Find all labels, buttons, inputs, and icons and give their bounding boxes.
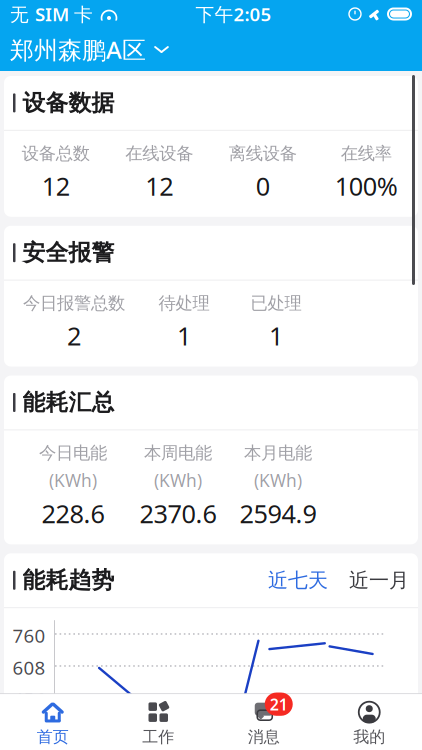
staticText: 本月电能 [244, 442, 312, 464]
staticText: 今日电能 [39, 442, 107, 464]
staticText: (KWh) [254, 469, 302, 492]
staticText: 608 [12, 655, 45, 680]
staticText: 1 [269, 319, 283, 352]
staticText: 本周电能 [144, 442, 212, 464]
staticText: 近一月 [349, 568, 409, 593]
button[interactable]: 近一月 [335, 568, 409, 593]
staticText: 能耗趋势 [22, 566, 114, 594]
staticText: 待处理 [158, 293, 209, 314]
staticText: 郑州森鹏A区 [10, 34, 146, 65]
staticText: 无 SIM 卡 [10, 2, 93, 26]
staticText: 12 [42, 169, 70, 203]
staticText: 2370.6 [139, 497, 216, 530]
staticText: 工作 [142, 727, 174, 747]
staticText: 100% [335, 169, 398, 203]
staticText: 首页 [37, 727, 69, 747]
staticText: 760 [12, 623, 45, 648]
button[interactable]: 近七天 [268, 568, 328, 593]
staticText: (KWh) [49, 469, 97, 492]
staticText: 能耗汇总 [22, 388, 114, 416]
staticText: 在线设备 [125, 143, 193, 164]
staticText: 228.6 [41, 497, 104, 530]
button[interactable]: 我的 [316, 694, 422, 750]
staticText: 21 [270, 693, 288, 715]
staticText: 456 [12, 687, 45, 712]
staticText: 12 [145, 169, 173, 203]
staticText: 0 [256, 169, 270, 203]
button[interactable]: 首页 [0, 694, 105, 750]
staticText: 设备总数 [22, 143, 90, 164]
staticText: 1 [177, 319, 191, 352]
button[interactable]: 工作 [105, 694, 211, 750]
staticText: 在线率 [341, 143, 392, 164]
staticText: 近七天 [268, 568, 328, 593]
staticText: 2594.9 [239, 497, 316, 530]
button[interactable]: 21 [211, 694, 316, 750]
staticText: 消息 [248, 727, 280, 747]
staticText: 今日报警总数 [23, 293, 125, 314]
staticText: 下午2:05 [195, 2, 271, 26]
button[interactable]: 郑州森鹏A区 [10, 28, 170, 71]
staticText: 我的 [353, 727, 385, 747]
staticText: 安全报警 [22, 239, 114, 267]
staticText: 离线设备 [229, 143, 297, 164]
staticText: (KWh) [154, 469, 202, 492]
staticText: 2 [67, 319, 81, 352]
staticText: 设备数据 [22, 89, 114, 117]
staticText: 已处理 [250, 293, 301, 314]
